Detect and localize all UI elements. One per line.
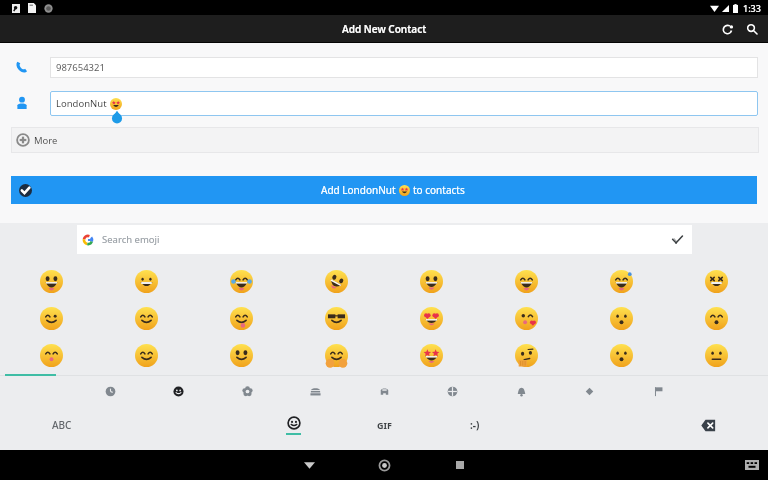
button[interactable]: Emoji [222, 300, 260, 336]
button[interactable]: ABC [36, 410, 88, 440]
staticText: to contacts [413, 183, 465, 197]
staticText: LondonNut [56, 97, 107, 110]
button[interactable]: Emoji [32, 337, 70, 373]
button[interactable]: Emoji [32, 300, 70, 336]
button[interactable]: Emoji [317, 300, 355, 336]
button[interactable]: Backspace [690, 410, 726, 440]
button[interactable]: Emoji [412, 263, 450, 299]
button[interactable]: Emoji [602, 337, 640, 373]
staticText: 987654321 [56, 61, 105, 74]
button[interactable]: :-) [451, 410, 499, 440]
button[interactable]: Emoji [602, 263, 640, 299]
button[interactable]: Emoji [127, 263, 165, 299]
button[interactable]: Emoji [412, 300, 450, 336]
button[interactable]: Search emoji [77, 225, 692, 254]
button[interactable]: Emoji [127, 300, 165, 336]
button[interactable]: Recent apps [439, 450, 481, 480]
button[interactable]: Emoji category 7 [504, 377, 538, 405]
button[interactable]: LondonNut [50, 91, 758, 116]
button[interactable]: Emoji [32, 263, 70, 299]
staticText: Add LondonNut [321, 183, 396, 197]
button[interactable]: Emoji keyboard [268, 408, 318, 442]
staticText: Search emoji [102, 233, 160, 246]
button[interactable]: GIF [360, 410, 408, 440]
staticText: :-) [470, 418, 480, 432]
staticText: ABC [52, 418, 72, 432]
button[interactable]: 987654321 [50, 57, 758, 78]
button[interactable]: Home [363, 450, 405, 480]
staticText: More [34, 134, 58, 147]
staticText: Add New Contact [342, 22, 427, 36]
button[interactable]: Emoji [127, 337, 165, 373]
button[interactable]: Emoji [697, 263, 735, 299]
button[interactable]: More [11, 127, 759, 153]
button[interactable]: Emoji category 8 [572, 377, 606, 405]
button[interactable]: Emoji [412, 337, 450, 373]
button[interactable]: Emoji category 3 [230, 377, 264, 405]
button[interactable]: Emoji category 5 [367, 377, 401, 405]
button[interactable]: Emoji [317, 263, 355, 299]
button[interactable]: Emoji category 4 [298, 377, 332, 405]
button[interactable]: Emoji [507, 300, 545, 336]
button[interactable]: Emoji [602, 300, 640, 336]
button[interactable]: Emoji category 1 [93, 377, 127, 405]
button[interactable]: Emoji [507, 337, 545, 373]
staticText: GIF [377, 419, 392, 431]
staticText: 1:33 [743, 2, 761, 14]
button[interactable]: Emoji [697, 337, 735, 373]
button[interactable]: Refresh [716, 18, 738, 40]
button[interactable]: Emoji [222, 263, 260, 299]
button[interactable]: Emoji category 6 [435, 377, 469, 405]
button[interactable]: Emoji [317, 337, 355, 373]
button[interactable]: Emoji [507, 263, 545, 299]
button[interactable]: Emoji [697, 300, 735, 336]
button[interactable]: Change keyboard [739, 450, 765, 480]
button[interactable]: Search [741, 18, 763, 40]
button[interactable]: Emoji [222, 337, 260, 373]
button[interactable]: Emoji category 9 [641, 377, 675, 405]
button[interactable]: Back [288, 450, 330, 480]
button[interactable]: Add LondonNut [11, 176, 757, 204]
button[interactable]: Emoji category 2 [161, 377, 195, 405]
